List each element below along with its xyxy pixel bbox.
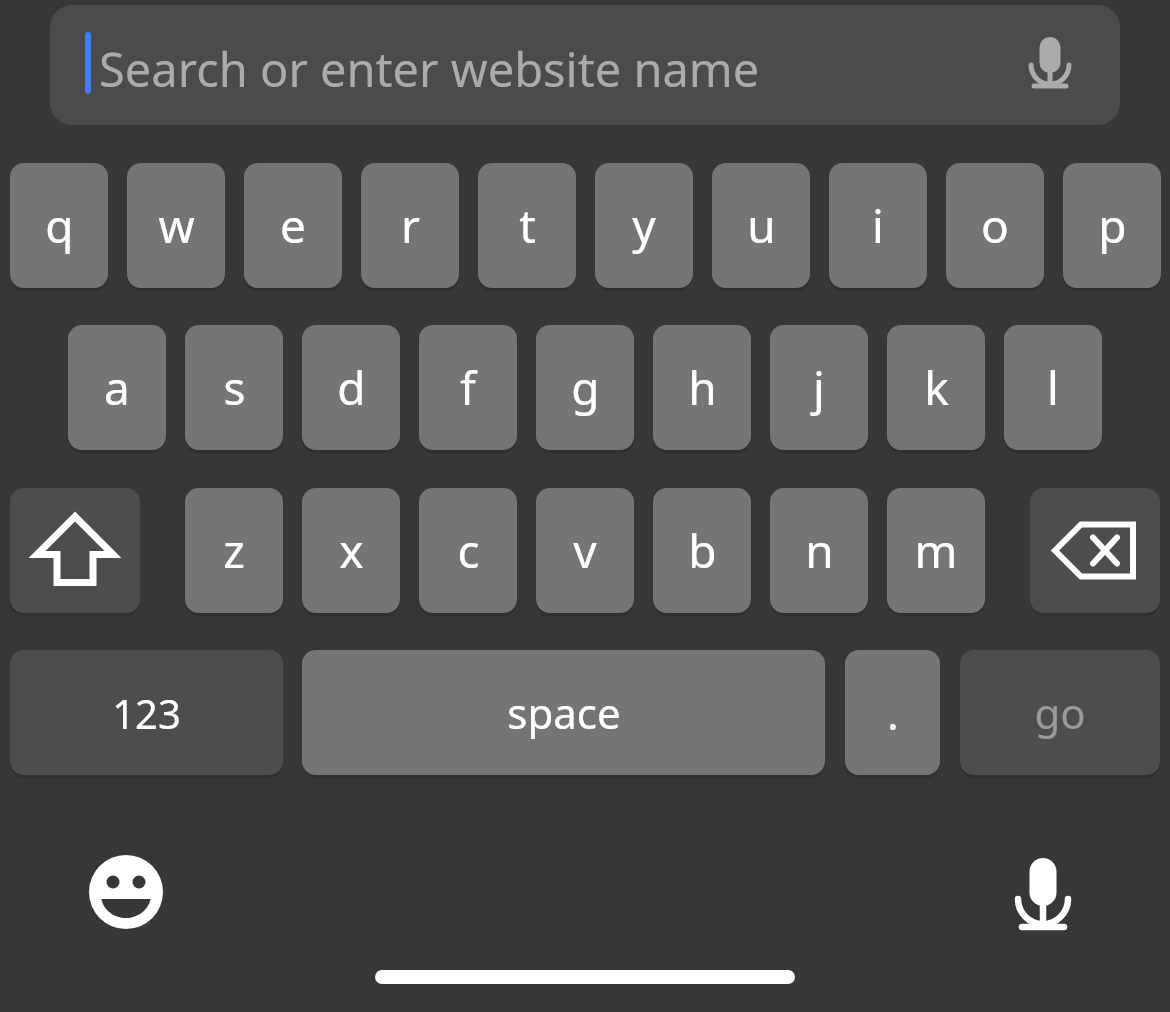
staticText: p	[1098, 194, 1127, 257]
button[interactable]: c	[419, 488, 517, 613]
staticText: 123	[112, 686, 181, 740]
staticText: e	[280, 194, 306, 257]
button[interactable]: g	[536, 325, 634, 450]
button[interactable]: l	[1004, 325, 1102, 450]
staticText: u	[747, 194, 776, 257]
staticText: x	[339, 519, 364, 582]
button[interactable]: m	[887, 488, 985, 613]
staticText: j	[813, 356, 825, 419]
staticText: s	[223, 356, 246, 419]
staticText: Search or enter website name	[99, 37, 760, 101]
button[interactable]: f	[419, 325, 517, 450]
button[interactable]: k	[887, 325, 985, 450]
staticText: .	[887, 683, 899, 743]
staticText: t	[519, 194, 536, 257]
button[interactable]: go	[960, 650, 1160, 775]
staticText: a	[104, 356, 130, 419]
button[interactable]	[50, 5, 1120, 125]
staticText: h	[688, 356, 717, 419]
button[interactable]: Dictate	[1002, 848, 1084, 936]
button[interactable]: j	[770, 325, 868, 450]
staticText: l	[1047, 356, 1059, 419]
staticText: z	[223, 519, 245, 582]
button[interactable]: p	[1063, 163, 1161, 288]
staticText: d	[337, 356, 366, 419]
staticText: f	[460, 356, 476, 419]
staticText: i	[872, 194, 884, 257]
button[interactable]: t	[478, 163, 576, 288]
button[interactable]: q	[10, 163, 108, 288]
staticText: w	[158, 194, 195, 257]
staticText: space	[507, 684, 621, 741]
staticText: n	[805, 519, 834, 582]
button[interactable]: s	[185, 325, 283, 450]
button[interactable]: n	[770, 488, 868, 613]
button[interactable]: Backspace	[1030, 488, 1160, 613]
staticText: v	[573, 519, 597, 582]
button[interactable]: b	[653, 488, 751, 613]
button[interactable]: a	[68, 325, 166, 450]
button[interactable]: r	[361, 163, 459, 288]
staticText: g	[571, 356, 600, 419]
button[interactable]: Voice search	[1010, 23, 1090, 103]
button[interactable]: 123	[10, 650, 283, 775]
button[interactable]: Shift	[10, 488, 140, 613]
button[interactable]: x	[302, 488, 400, 613]
button[interactable]: y	[595, 163, 693, 288]
staticText: q	[45, 194, 74, 257]
button[interactable]: Emoji keyboard	[86, 852, 166, 932]
button[interactable]: v	[536, 488, 634, 613]
button[interactable]: i	[829, 163, 927, 288]
staticText: c	[457, 519, 480, 582]
button[interactable]: e	[244, 163, 342, 288]
button[interactable]: u	[712, 163, 810, 288]
button[interactable]: h	[653, 325, 751, 450]
button[interactable]: w	[127, 163, 225, 288]
staticText: go	[1034, 684, 1086, 741]
staticText: o	[981, 194, 1009, 257]
staticText: y	[632, 194, 656, 257]
button[interactable]: space	[302, 650, 825, 775]
button[interactable]: o	[946, 163, 1044, 288]
staticText: k	[924, 356, 949, 419]
button[interactable]: .	[845, 650, 940, 775]
staticText: m	[914, 519, 958, 582]
staticText: r	[401, 194, 420, 257]
button[interactable]: d	[302, 325, 400, 450]
staticText: b	[688, 519, 717, 582]
button[interactable]: z	[185, 488, 283, 613]
